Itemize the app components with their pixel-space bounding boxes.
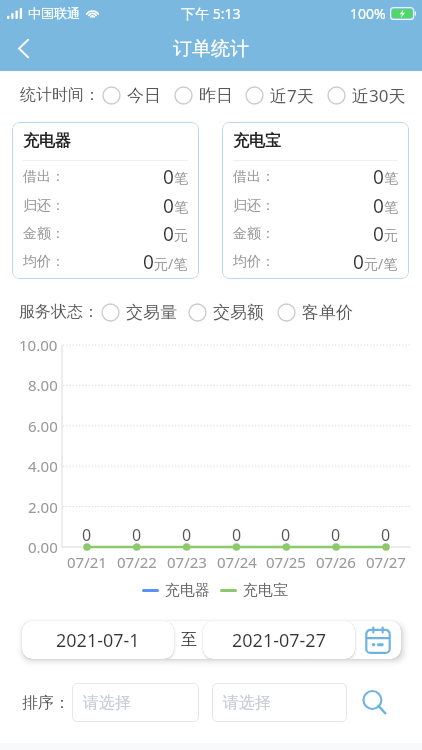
staticText: 100% xyxy=(350,4,386,23)
staticText: 充电宝 xyxy=(233,131,281,151)
staticText: 07/21 xyxy=(67,552,107,572)
staticText: 笔 xyxy=(174,199,188,217)
staticText: 元/笔 xyxy=(364,254,398,273)
staticText: 0 xyxy=(373,193,384,219)
staticText: 07/25 xyxy=(266,552,306,572)
staticText: 统计时间： xyxy=(20,85,100,105)
staticText: 0 xyxy=(82,524,92,542)
staticText: 0 xyxy=(331,524,341,542)
staticText: 10.00 xyxy=(19,335,58,355)
staticText: 下午 5:13 xyxy=(181,4,241,23)
button[interactable]: 近7天 xyxy=(245,84,314,107)
staticText: 2021-07-27 xyxy=(232,628,326,653)
staticText: 0 xyxy=(373,164,384,190)
staticText: 客单价 xyxy=(302,302,353,323)
button[interactable]: 充电器 xyxy=(12,122,199,279)
button[interactable]: 请选择 xyxy=(72,683,199,722)
button[interactable]: 昨日 xyxy=(174,85,233,106)
staticText: 0 xyxy=(163,193,174,219)
button[interactable]: 请选择 xyxy=(212,683,347,722)
button[interactable]: 2021-07-27 xyxy=(203,621,355,659)
staticText: 0 xyxy=(381,524,391,542)
staticText: 交易额 xyxy=(213,302,264,323)
staticText: 充电器 xyxy=(165,581,210,600)
staticText: 元/笔 xyxy=(154,254,188,273)
staticText: 笔 xyxy=(384,170,398,188)
staticText: 近30天 xyxy=(352,84,406,107)
staticText: 0 xyxy=(143,249,154,275)
button[interactable]: Back xyxy=(0,26,46,71)
staticText: 07/22 xyxy=(117,552,157,572)
staticText: 笔 xyxy=(174,170,188,188)
button[interactable]: 交易额 xyxy=(188,302,264,323)
button[interactable]: 客单价 xyxy=(277,302,353,323)
staticText: 至 xyxy=(181,630,197,650)
staticText: 请选择 xyxy=(223,693,271,713)
staticText: 充电宝 xyxy=(243,581,288,600)
staticText: 金额： xyxy=(233,225,275,243)
staticText: 07/26 xyxy=(316,552,356,572)
button[interactable]: Calendar xyxy=(355,621,401,659)
staticText: 07/24 xyxy=(217,552,257,572)
staticText: 4.00 xyxy=(28,456,58,476)
staticText: 元 xyxy=(384,227,398,245)
staticText: 中国联通 xyxy=(28,5,80,21)
button[interactable]: 今日 xyxy=(102,85,161,106)
staticText: 07/23 xyxy=(167,552,207,572)
staticText: 借出： xyxy=(23,168,65,186)
button[interactable]: 充电宝 xyxy=(222,122,409,279)
staticText: 请选择 xyxy=(83,693,131,713)
button[interactable]: Search xyxy=(358,686,392,720)
staticText: 0 xyxy=(163,164,174,190)
staticText: 6.00 xyxy=(28,416,58,436)
staticText: 订单统计 xyxy=(0,37,422,61)
staticText: 服务状态： xyxy=(19,302,99,322)
staticText: 8.00 xyxy=(28,375,58,395)
staticText: 交易量 xyxy=(126,302,177,323)
staticText: 0.00 xyxy=(28,537,58,557)
staticText: 排序： xyxy=(22,693,70,713)
staticText: 0 xyxy=(373,221,384,247)
button[interactable]: 交易量 xyxy=(101,302,177,323)
staticText: 0 xyxy=(182,524,192,542)
staticText: 借出： xyxy=(233,168,275,186)
staticText: 0 xyxy=(163,221,174,247)
staticText: 0 xyxy=(232,524,242,542)
staticText: 元 xyxy=(174,227,188,245)
button[interactable]: 近30天 xyxy=(327,84,406,107)
staticText: 昨日 xyxy=(199,85,233,106)
button[interactable]: 2021-07-1 xyxy=(22,621,174,659)
staticText: 归还： xyxy=(23,197,65,215)
staticText: 近7天 xyxy=(270,84,314,107)
staticText: 均价： xyxy=(23,253,65,271)
staticText: 归还： xyxy=(233,197,275,215)
staticText: 今日 xyxy=(127,85,161,106)
staticText: 金额： xyxy=(23,225,65,243)
staticText: 2021-07-1 xyxy=(56,628,140,653)
staticText: 0 xyxy=(281,524,291,542)
staticText: 充电器 xyxy=(23,131,71,151)
staticText: 07/27 xyxy=(366,552,406,572)
staticText: 0 xyxy=(132,524,142,542)
staticText: 笔 xyxy=(384,199,398,217)
staticText: 均价： xyxy=(233,253,275,271)
staticText: 2.00 xyxy=(28,497,58,517)
staticText: 0 xyxy=(353,249,364,275)
